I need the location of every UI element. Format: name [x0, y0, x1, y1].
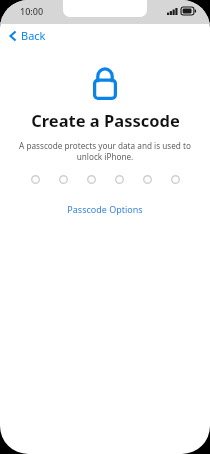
- button[interactable]: Back: [6, 26, 49, 45]
- staticText: Back: [21, 28, 46, 43]
- other: Lock: [93, 67, 117, 100]
- staticText: A passcode protects your data and is use…: [16, 140, 194, 162]
- staticText: Passcode Options: [67, 203, 143, 215]
- staticText: Create a Passcode: [31, 109, 180, 131]
- staticText: 10:00: [20, 5, 44, 17]
- button[interactable]: Passcode Options: [59, 200, 151, 218]
